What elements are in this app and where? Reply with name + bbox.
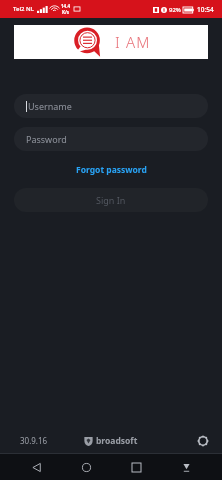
button[interactable]: Settings [194, 432, 212, 450]
button[interactable]: Back [26, 457, 46, 477]
staticText: 92% [169, 6, 181, 14]
staticText: Password [26, 133, 67, 145]
button[interactable]: Recent apps [126, 457, 146, 477]
button[interactable]: Username [14, 94, 208, 118]
button[interactable]: Hide keyboard [176, 457, 196, 477]
staticText: Forgot password [76, 164, 147, 176]
staticText: broadsoft [96, 435, 138, 447]
staticText: Tel2 NL [13, 5, 34, 13]
button[interactable]: Forgot password [68, 162, 155, 178]
staticText: 30.9.16 [20, 435, 48, 446]
staticText: 14.4 [61, 3, 70, 9]
button[interactable]: Sign In [14, 188, 208, 212]
staticText: I AM [115, 32, 151, 52]
staticText: Sign In [96, 194, 126, 206]
staticText: K/s [62, 9, 70, 15]
button[interactable]: Home [76, 457, 96, 477]
staticText: 10:54 [197, 5, 214, 14]
button[interactable]: Password [14, 127, 208, 151]
staticText: Username [28, 100, 72, 112]
